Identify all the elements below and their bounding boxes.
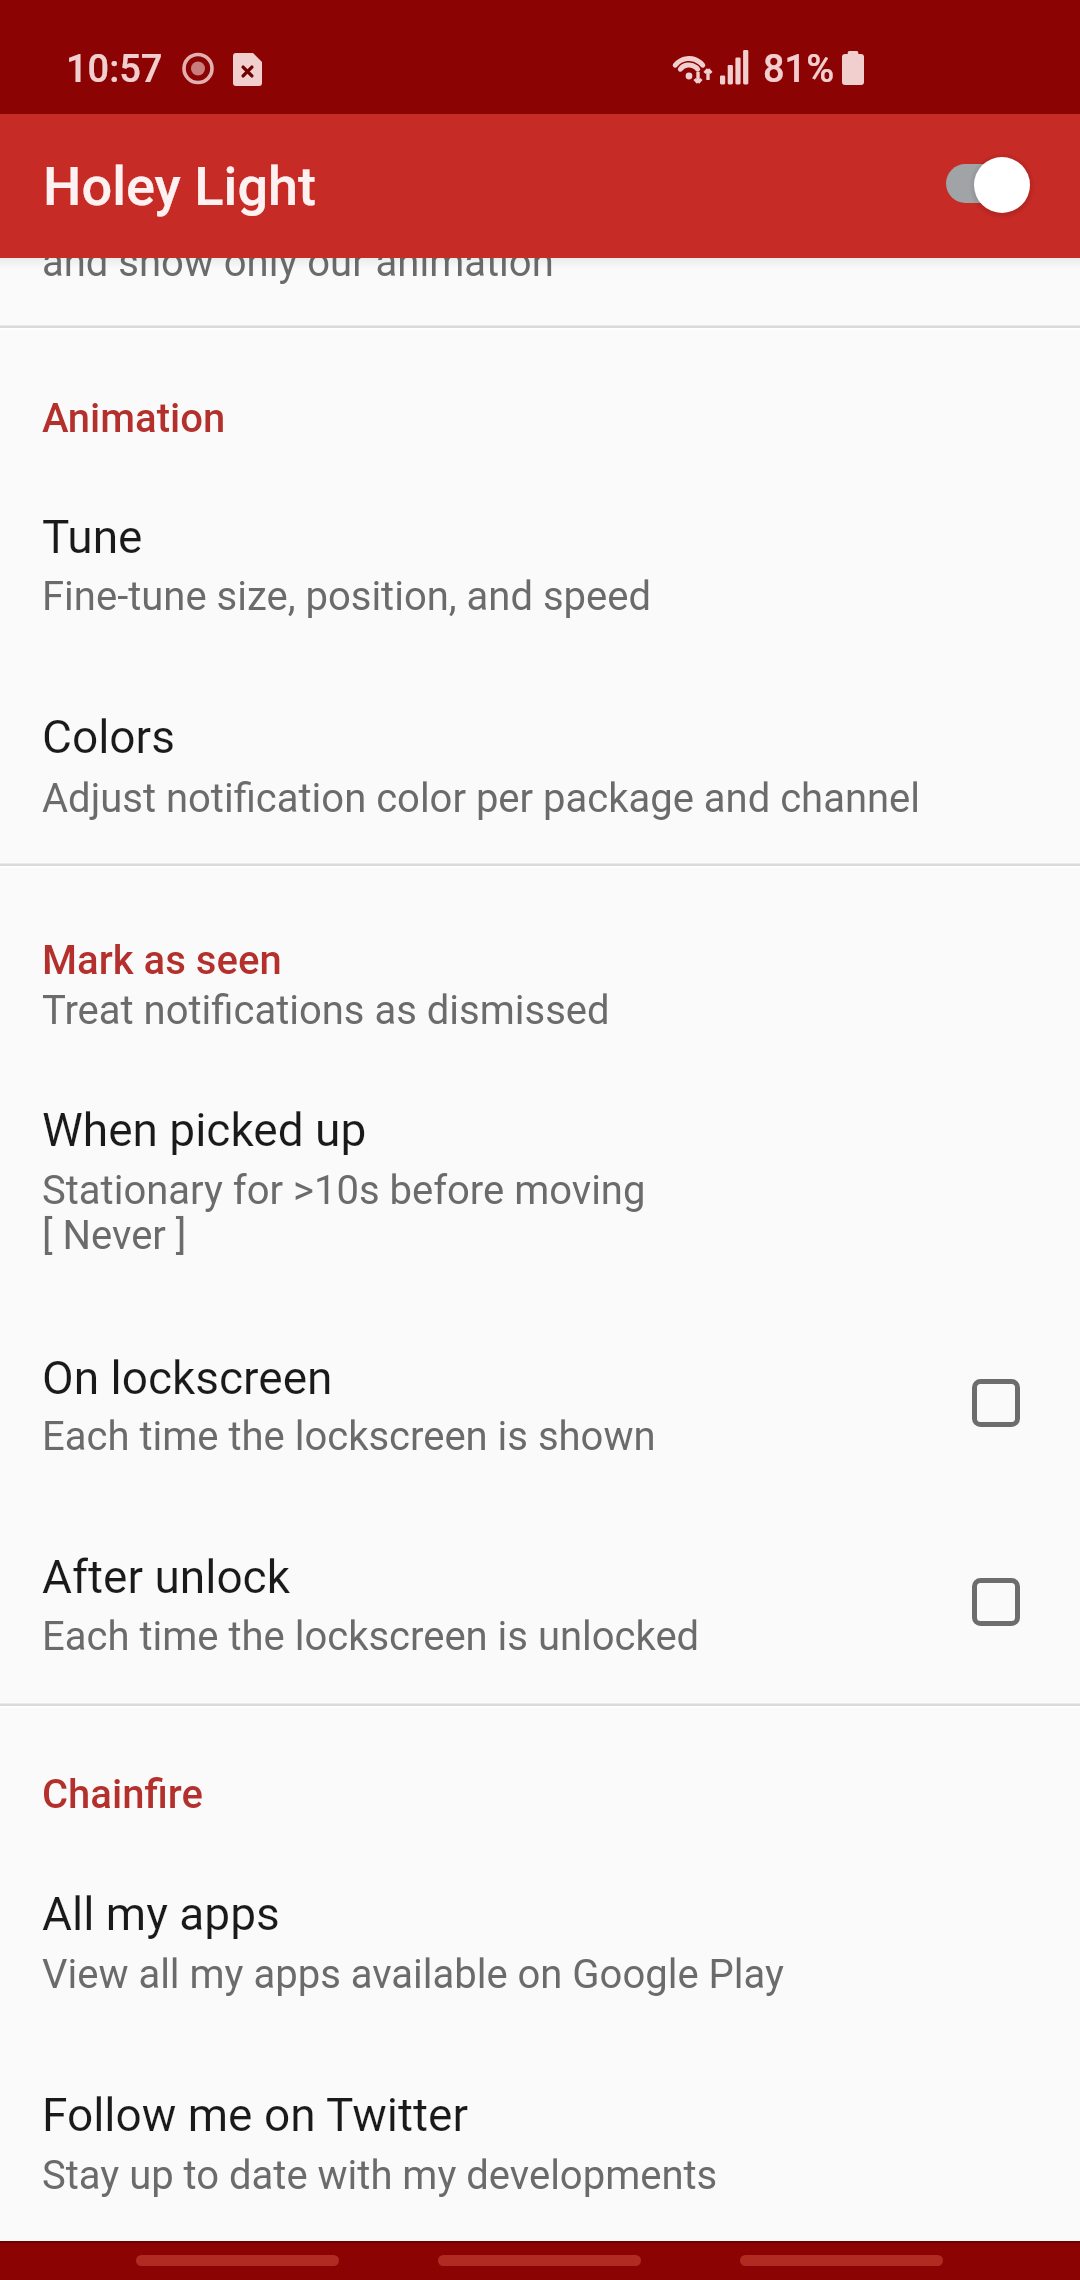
staticText: Animation xyxy=(42,395,226,442)
staticText: and show only our animation xyxy=(42,239,554,286)
staticText: 10:57 xyxy=(66,47,163,92)
staticText: 81% xyxy=(763,47,835,92)
button[interactable]: After unlock xyxy=(0,1510,1080,1690)
staticText: [ Never ] xyxy=(42,1212,187,1259)
button[interactable]: Enable Holey Light xyxy=(928,143,1048,221)
staticText: Each time the lockscreen is unlocked xyxy=(42,1613,700,1660)
button[interactable]: On lockscreen xyxy=(944,1351,1048,1455)
button[interactable]: Tune xyxy=(0,470,1080,650)
staticText: Each time the lockscreen is shown xyxy=(42,1413,656,1460)
staticText: View all my apps available on Google Pla… xyxy=(42,1951,784,1998)
button[interactable]: Home xyxy=(438,2241,641,2280)
button[interactable]: All my apps xyxy=(0,1849,1080,2029)
staticText: When picked up xyxy=(42,1103,367,1157)
staticText: All my apps xyxy=(42,1887,280,1941)
button[interactable]: Back xyxy=(740,2241,943,2280)
staticText: Colors xyxy=(42,710,175,764)
button[interactable]: On lockscreen xyxy=(0,1310,1080,1490)
button[interactable]: Follow me on Twitter xyxy=(0,2049,1080,2229)
staticText: After unlock xyxy=(42,1550,291,1604)
button[interactable]: After unlock xyxy=(944,1550,1048,1654)
staticText: Treat notifications as dismissed xyxy=(42,987,610,1034)
staticText: Mark as seen xyxy=(42,937,282,984)
staticText: Chainfire xyxy=(42,1771,203,1818)
staticText: Adjust notification color per package an… xyxy=(42,775,921,822)
staticText: Tune xyxy=(42,510,143,564)
button[interactable]: Colors xyxy=(0,670,1080,850)
staticText: Holey Light xyxy=(43,155,316,218)
staticText: Stationary for >10s before moving xyxy=(42,1167,646,1214)
button[interactable]: When picked up xyxy=(0,1060,1080,1290)
staticText: Stay up to date with my developments xyxy=(42,2152,718,2199)
staticText: Fine-tune size, position, and speed xyxy=(42,573,652,620)
staticText: Follow me on Twitter xyxy=(42,2088,469,2142)
button[interactable]: Recents xyxy=(136,2241,339,2280)
staticText: On lockscreen xyxy=(42,1351,333,1405)
